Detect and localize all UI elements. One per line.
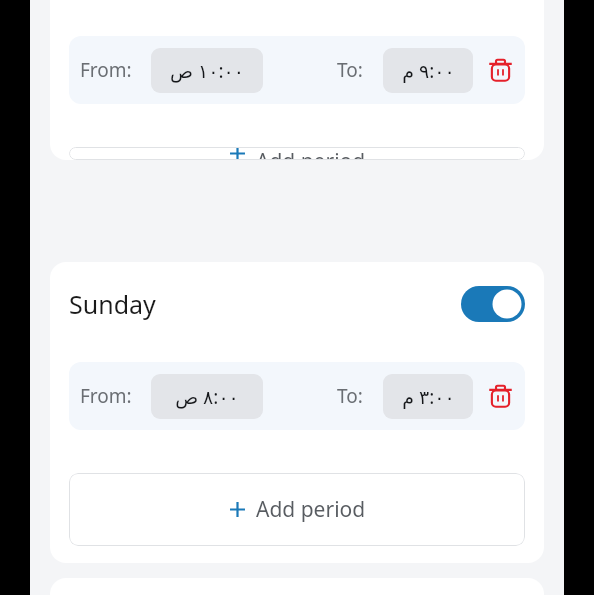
staticText: Sunday xyxy=(69,287,156,321)
staticText: From: xyxy=(80,57,132,83)
staticText: ٣:٠٠ م xyxy=(402,384,455,410)
staticText: ١٠:٠٠ ص xyxy=(170,58,244,84)
button[interactable]: Delete period xyxy=(483,379,517,413)
button[interactable]: Add period xyxy=(69,147,525,160)
button[interactable]: ٣:٠٠ م xyxy=(383,374,473,419)
staticText: ٩:٠٠ م xyxy=(402,58,455,84)
staticText: Add period xyxy=(256,147,366,160)
button[interactable]: Add period xyxy=(69,473,525,546)
button[interactable]: ٩:٠٠ م xyxy=(383,48,473,93)
staticText: From: xyxy=(80,383,132,409)
button[interactable]: ٨:٠٠ ص xyxy=(151,374,263,419)
staticText: To: xyxy=(337,57,363,83)
staticText: To: xyxy=(337,383,363,409)
button[interactable]: Toggle day enabled xyxy=(461,286,525,322)
button[interactable]: Delete period xyxy=(483,53,517,87)
button[interactable]: ١٠:٠٠ ص xyxy=(151,48,263,93)
staticText: ٨:٠٠ ص xyxy=(175,384,239,410)
staticText: Add period xyxy=(256,495,366,524)
